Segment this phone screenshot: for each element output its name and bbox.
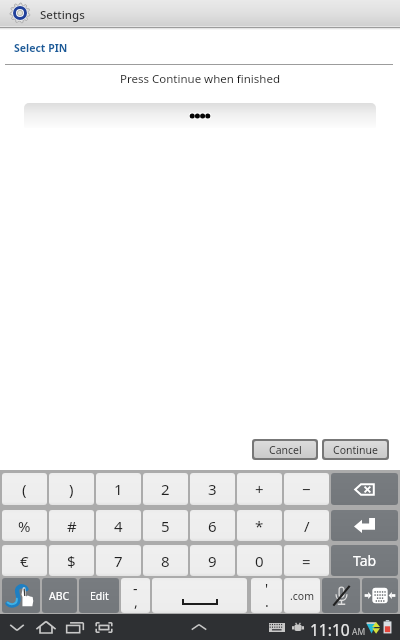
- button[interactable]: 7: [96, 545, 141, 576]
- button[interactable]: ': [251, 578, 282, 613]
- staticText: 0: [255, 551, 264, 571]
- staticText: ,: [134, 592, 138, 611]
- button[interactable]: 5: [143, 510, 188, 541]
- button[interactable]: Continue: [324, 441, 387, 458]
- staticText: -: [133, 579, 138, 598]
- button[interactable]: Voice input: [322, 578, 360, 613]
- staticText: .com: [290, 589, 315, 603]
- staticText: 1: [114, 479, 123, 499]
- button[interactable]: Enter: [331, 510, 398, 541]
- button[interactable]: 0: [237, 545, 282, 576]
- button[interactable]: 6: [190, 510, 235, 541]
- staticText: 5: [161, 516, 170, 536]
- button[interactable]: €: [2, 545, 47, 576]
- button[interactable]: Backspace: [331, 473, 398, 505]
- button[interactable]: 9: [190, 545, 235, 576]
- staticText: ): [69, 479, 74, 499]
- staticText: %: [18, 516, 31, 536]
- staticText: −: [302, 479, 311, 499]
- button[interactable]: Swype input: [2, 578, 40, 613]
- button[interactable]: ABC: [42, 578, 77, 613]
- staticText: €: [20, 551, 29, 571]
- button[interactable]: /: [284, 510, 329, 541]
- staticText: Edit: [90, 589, 109, 603]
- staticText: Cancel: [269, 443, 302, 457]
- button[interactable]: −: [284, 473, 329, 505]
- staticText: Press Continue when finished: [0, 71, 400, 87]
- button[interactable]: =: [284, 545, 329, 576]
- staticText: Continue: [333, 443, 378, 457]
- button[interactable]: Cancel: [254, 441, 316, 458]
- staticText: =: [302, 551, 311, 571]
- staticText: 8: [161, 551, 170, 571]
- button[interactable]: Show keyboard: [186, 614, 212, 640]
- staticText: .: [265, 592, 269, 611]
- staticText: Tab: [353, 551, 377, 570]
- button[interactable]: 2: [143, 473, 188, 505]
- button[interactable]: Home: [33, 614, 59, 640]
- staticText: $: [67, 551, 76, 571]
- staticText: #: [67, 516, 77, 536]
- other: Voice input: [333, 585, 350, 606]
- other: Enter: [354, 518, 375, 533]
- staticText: 4: [114, 516, 123, 536]
- button[interactable]: Screenshot: [91, 614, 117, 640]
- other: Swype input: [6, 582, 37, 609]
- button[interactable]: -: [121, 578, 150, 613]
- staticText: ABC: [49, 589, 70, 603]
- button[interactable]: 4: [96, 510, 141, 541]
- button[interactable]: *: [237, 510, 282, 541]
- other: Resize keyboard: [364, 587, 396, 604]
- staticText: 6: [208, 516, 217, 536]
- other: Space: [182, 598, 218, 605]
- button[interactable]: .com: [284, 578, 320, 613]
- button[interactable]: Hide keyboard: [4, 614, 30, 640]
- staticText: 3: [208, 479, 217, 499]
- staticText: *: [255, 516, 264, 536]
- staticText: (: [22, 479, 27, 499]
- button[interactable]: $: [49, 545, 94, 576]
- button[interactable]: #: [49, 510, 94, 541]
- button[interactable]: [24, 103, 376, 128]
- button[interactable]: 1: [96, 473, 141, 505]
- staticText: AM: [352, 626, 366, 638]
- button[interactable]: Resize keyboard: [362, 578, 398, 613]
- other: Backspace: [354, 483, 375, 496]
- staticText: Settings: [40, 7, 85, 23]
- staticText: 7: [114, 551, 123, 571]
- button[interactable]: Space: [152, 578, 247, 613]
- staticText: 11:10: [310, 619, 350, 640]
- button[interactable]: Settings: [10, 3, 30, 23]
- staticText: 9: [208, 551, 217, 571]
- button[interactable]: 3: [190, 473, 235, 505]
- button[interactable]: Edit: [79, 578, 119, 613]
- button[interactable]: +: [237, 473, 282, 505]
- staticText: +: [255, 479, 264, 499]
- button[interactable]: Recent apps: [62, 614, 88, 640]
- button[interactable]: 8: [143, 545, 188, 576]
- button[interactable]: (: [2, 473, 47, 505]
- staticText: Select PIN: [14, 41, 68, 55]
- staticText: 2: [161, 479, 170, 499]
- staticText: ': [265, 579, 269, 598]
- button[interactable]: Tab: [331, 545, 398, 576]
- button[interactable]: %: [2, 510, 47, 541]
- button[interactable]: ): [49, 473, 94, 505]
- staticText: /: [304, 516, 310, 536]
